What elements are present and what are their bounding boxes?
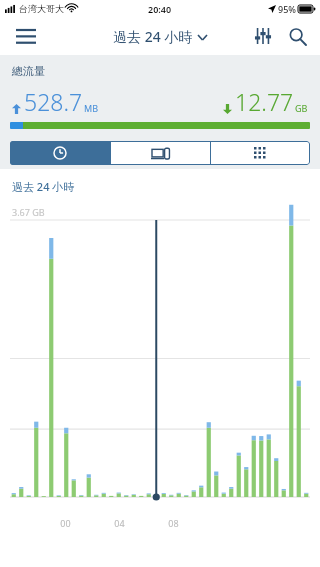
staticText: 08	[168, 517, 179, 529]
staticText: 20:40	[148, 3, 172, 15]
staticText: 台湾大哥大	[19, 3, 64, 14]
button[interactable]: Time	[10, 141, 110, 165]
staticText: 12.77	[235, 86, 294, 117]
staticText: 04	[114, 517, 125, 529]
staticText: GB	[295, 102, 308, 114]
button[interactable]: Filter	[246, 19, 280, 53]
staticText: MB	[84, 102, 99, 114]
button[interactable]: 過去 24 小時	[113, 27, 207, 46]
staticText: 過去 24 小時	[12, 179, 75, 194]
staticText: 00	[60, 517, 71, 529]
button[interactable]: Menu	[8, 18, 44, 54]
staticText: 3.67 GB	[12, 206, 45, 218]
staticText: 總流量	[12, 64, 45, 78]
staticText: 過去 24 小時	[113, 27, 193, 46]
button[interactable]: Devices	[111, 141, 210, 165]
staticText: 528.7	[24, 86, 83, 117]
staticText: 95%	[278, 3, 296, 15]
button[interactable]: Apps	[211, 141, 310, 165]
button[interactable]: Search	[280, 19, 314, 53]
